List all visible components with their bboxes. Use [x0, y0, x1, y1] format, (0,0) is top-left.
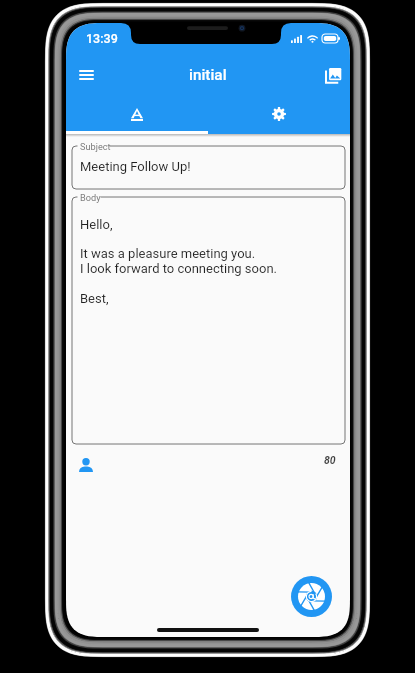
button[interactable]: Compose message — [291, 576, 332, 617]
button[interactable]: Settings — [208, 97, 350, 131]
staticText: Hello, It was a pleasure meeting you. I … — [80, 217, 277, 307]
button[interactable]: Menu — [72, 61, 100, 89]
button[interactable]: Format — [66, 97, 208, 131]
button[interactable]: Images — [319, 61, 347, 89]
button[interactable]: Contacts — [74, 453, 98, 477]
staticText: Subject — [80, 141, 111, 152]
staticText: 80 — [324, 454, 336, 466]
staticText: Meeting Follow Up! — [80, 159, 191, 174]
staticText: Body — [80, 192, 101, 203]
staticText: 13:39 — [86, 31, 118, 46]
staticText: initial — [189, 66, 227, 84]
